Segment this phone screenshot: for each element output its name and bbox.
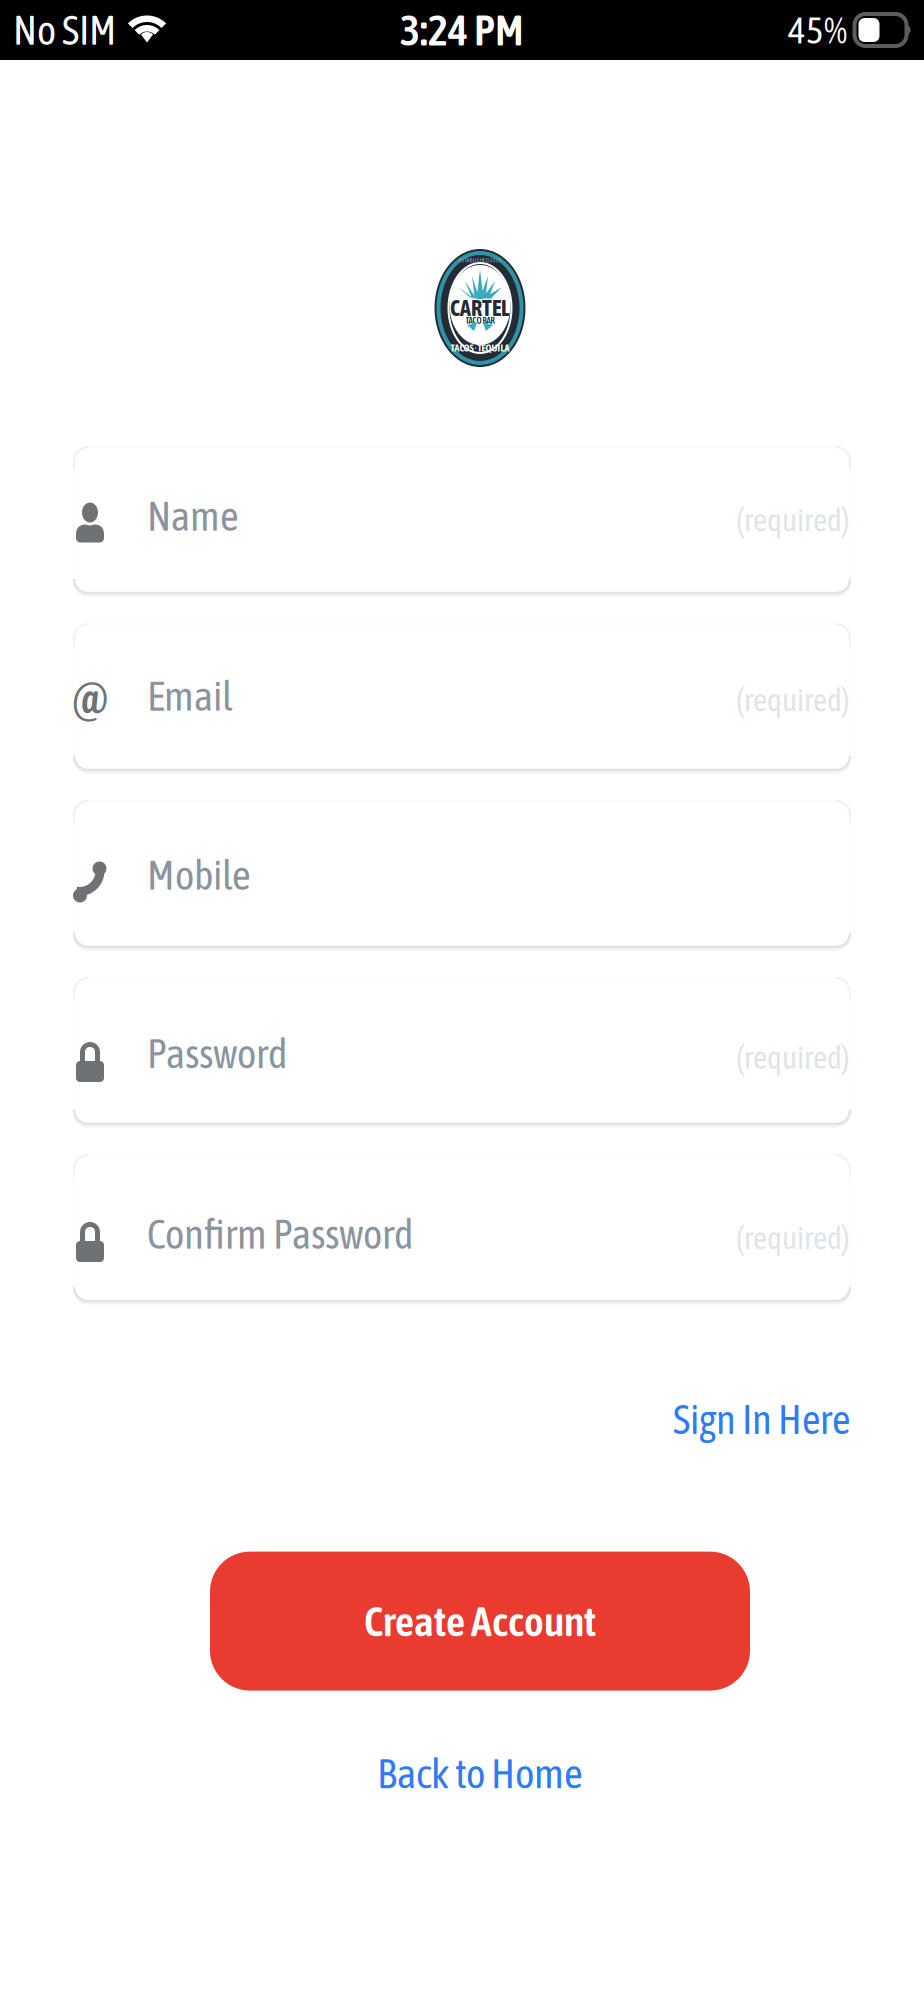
staticText: Password [147, 1030, 287, 1077]
staticText: Name [147, 492, 239, 540]
staticText: Sign In Here [673, 1396, 850, 1443]
button[interactable]: Mobile [74, 801, 850, 947]
staticText: Email [147, 672, 233, 720]
button[interactable]: @ [74, 624, 850, 770]
staticText: (required) [736, 682, 850, 718]
staticText: TACO BAR [465, 315, 494, 325]
staticText: Create Account [364, 1597, 596, 1645]
staticText: ESTABLISHED 2015 [458, 257, 501, 263]
staticText: Back to Home [377, 1750, 583, 1797]
button[interactable]: Confirm Password [74, 1155, 850, 1301]
staticText: @ [72, 672, 108, 725]
button[interactable]: Sign In Here [673, 1396, 850, 1443]
button[interactable]: Back to Home [377, 1750, 583, 1797]
button[interactable]: Password [74, 978, 850, 1124]
staticText: TACOS · TEQUILA [450, 342, 509, 354]
staticText: Mobile [147, 851, 251, 899]
staticText: (required) [736, 1220, 850, 1256]
button[interactable]: Name [74, 447, 850, 593]
staticText: 45% [788, 9, 847, 51]
staticText: 3:24 PM [400, 6, 524, 54]
staticText: Confirm Password [147, 1210, 413, 1258]
staticText: CARTEL [450, 295, 510, 321]
staticText: No SIM [13, 7, 116, 53]
staticText: (required) [736, 1039, 850, 1075]
staticText: (required) [736, 502, 850, 538]
button[interactable]: Create Account [210, 1552, 750, 1691]
